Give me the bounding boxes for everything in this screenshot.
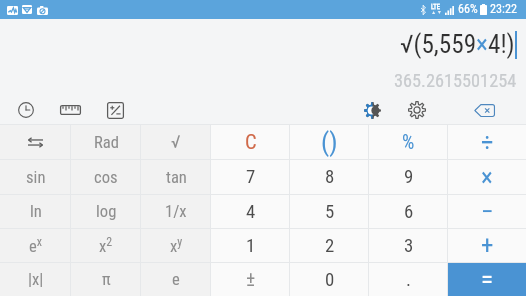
- staticText: =: [481, 265, 493, 294]
- staticText: +: [481, 231, 494, 260]
- staticText: 66%: [458, 2, 478, 16]
- staticText: log: [96, 202, 117, 221]
- button[interactable]: History: [14, 98, 38, 122]
- button[interactable]: Theme: [361, 99, 383, 121]
- staticText: 365.2615501254: [394, 70, 517, 91]
- button[interactable]: Unit converter: [58, 97, 83, 122]
- staticText: 9: [404, 166, 414, 188]
- staticText: Rad: [94, 133, 119, 152]
- button[interactable]: Sign and fraction: [103, 98, 127, 122]
- staticText: 1/x: [165, 202, 187, 221]
- button[interactable]: (): [290, 125, 369, 159]
- button[interactable]: ÷: [448, 125, 526, 159]
- staticText: |x|: [28, 270, 44, 289]
- staticText: 1: [246, 235, 256, 257]
- button[interactable]: 0: [290, 263, 369, 296]
- staticText: √: [171, 132, 181, 153]
- button[interactable]: sin: [0, 160, 71, 194]
- button[interactable]: 9: [369, 160, 448, 194]
- button[interactable]: |x|: [0, 263, 71, 296]
- button[interactable]: x2: [71, 229, 141, 262]
- staticText: tan: [166, 168, 187, 187]
- staticText: 0: [325, 269, 335, 291]
- button[interactable]: ±: [211, 263, 290, 296]
- button[interactable]: 3: [369, 229, 448, 262]
- button[interactable]: 2: [290, 229, 369, 262]
- staticText: 4: [246, 201, 256, 223]
- staticText: ×: [481, 163, 493, 192]
- button[interactable]: 1: [211, 229, 290, 262]
- button[interactable]: ×: [448, 160, 526, 194]
- button[interactable]: C: [211, 125, 290, 159]
- staticText: (): [321, 127, 338, 157]
- staticText: %: [402, 131, 415, 154]
- button[interactable]: 5: [290, 195, 369, 228]
- button[interactable]: ex: [0, 229, 71, 262]
- button[interactable]: Settings: [406, 99, 428, 121]
- button[interactable]: −: [448, 195, 526, 228]
- button[interactable]: xy: [141, 229, 211, 262]
- staticText: x2: [99, 235, 113, 256]
- staticText: π: [102, 270, 111, 289]
- staticText: 2: [325, 235, 335, 257]
- button[interactable]: log: [71, 195, 141, 228]
- button[interactable]: Rad: [71, 125, 141, 159]
- button[interactable]: 8: [290, 160, 369, 194]
- staticText: xy: [170, 235, 183, 256]
- button[interactable]: Backspace: [470, 96, 498, 124]
- button[interactable]: e: [141, 263, 211, 296]
- staticText: C: [245, 130, 257, 154]
- button[interactable]: π: [71, 263, 141, 296]
- staticText: e: [172, 270, 180, 289]
- staticText: −: [481, 197, 494, 226]
- button[interactable]: .: [369, 263, 448, 296]
- button[interactable]: +: [448, 229, 526, 262]
- button[interactable]: 4: [211, 195, 290, 228]
- button[interactable]: tan: [141, 160, 211, 194]
- button[interactable]: 6: [369, 195, 448, 228]
- other: Swap: [28, 137, 43, 148]
- staticText: 7: [246, 166, 256, 188]
- staticText: ÷: [481, 128, 494, 157]
- staticText: .: [406, 269, 411, 291]
- staticText: ex: [29, 235, 43, 256]
- button[interactable]: √: [141, 125, 211, 159]
- button[interactable]: 7: [211, 160, 290, 194]
- button[interactable]: 1/x: [141, 195, 211, 228]
- staticText: sin: [26, 168, 46, 187]
- staticText: LTE: [431, 3, 440, 11]
- staticText: √(5,559×4!): [400, 30, 515, 60]
- staticText: cos: [94, 168, 118, 187]
- staticText: 23:22: [490, 2, 517, 16]
- button[interactable]: %: [369, 125, 448, 159]
- staticText: ±: [246, 268, 256, 291]
- staticText: 5: [325, 201, 335, 223]
- button[interactable]: =: [448, 263, 526, 296]
- button[interactable]: ln: [0, 195, 71, 228]
- staticText: 8: [325, 166, 335, 188]
- staticText: 6: [404, 201, 414, 223]
- staticText: ln: [30, 202, 42, 221]
- button[interactable]: Swap: [0, 125, 71, 159]
- staticText: 3: [404, 235, 414, 257]
- button[interactable]: cos: [71, 160, 141, 194]
